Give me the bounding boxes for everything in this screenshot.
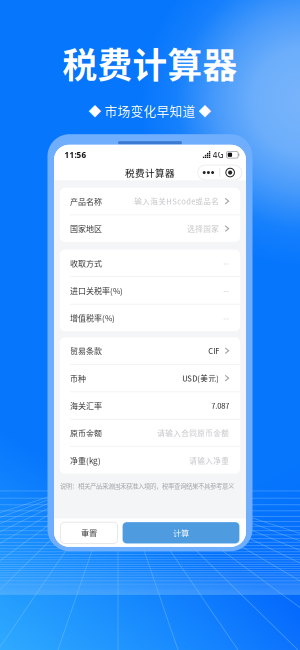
staticText: ◆ 市场变化早知道 ◆ xyxy=(88,101,211,119)
button[interactable]: 重置 xyxy=(61,522,118,543)
button[interactable]: 产品名称 xyxy=(60,188,240,214)
staticText: 11:56 xyxy=(64,149,86,160)
button[interactable]: 计算 xyxy=(123,522,239,543)
staticText: 币种 xyxy=(70,372,86,384)
staticText: CIF xyxy=(208,345,219,356)
staticText: 重置 xyxy=(81,527,97,539)
staticText: 进口关税率(%) xyxy=(70,285,123,296)
staticText: USD(美元) xyxy=(182,373,219,384)
staticText: 选择国家 xyxy=(187,223,219,234)
staticText: 税费计算器 xyxy=(62,38,237,88)
staticText: 国家地区 xyxy=(70,223,102,234)
button[interactable]: 币种 xyxy=(60,365,240,391)
staticText: 计算 xyxy=(173,527,189,539)
button[interactable]: 收取方式 xyxy=(60,250,240,276)
button[interactable]: 海关汇率 xyxy=(60,392,240,419)
staticText: 请输入净重 xyxy=(189,455,229,466)
staticText: 原币金额 xyxy=(70,427,102,439)
button[interactable]: 进口关税率(%) xyxy=(60,277,240,304)
staticText: 增值税率(%) xyxy=(70,312,115,324)
staticText: 请输入合同原币金额 xyxy=(157,427,229,438)
staticText: -- xyxy=(223,257,229,268)
button[interactable]: 国家地区 xyxy=(60,215,240,242)
staticText: 输入海关HScode或品名 xyxy=(134,196,219,207)
staticText: 说明：相关产品来源国未获准入境的，税率查询结果不具参考意义 xyxy=(60,481,234,490)
staticText: -- xyxy=(223,312,229,323)
staticText: 产品名称 xyxy=(70,195,102,207)
button[interactable]: 增值税率(%) xyxy=(60,304,240,331)
staticText: 4G xyxy=(213,149,224,160)
staticText: 海关汇率 xyxy=(70,400,102,411)
staticText: 净重(kg) xyxy=(70,455,101,466)
staticText: 贸易条款 xyxy=(70,345,102,357)
button[interactable]: 净重(kg) xyxy=(60,447,240,474)
button[interactable]: 原币金额 xyxy=(60,420,240,446)
staticText: -- xyxy=(223,285,229,296)
staticText: 税费计算器 xyxy=(125,166,175,179)
button[interactable]: More options xyxy=(198,165,242,180)
staticText: 7.087 xyxy=(211,400,229,411)
staticText: 收取方式 xyxy=(70,257,102,269)
button[interactable]: 贸易条款 xyxy=(60,337,240,364)
